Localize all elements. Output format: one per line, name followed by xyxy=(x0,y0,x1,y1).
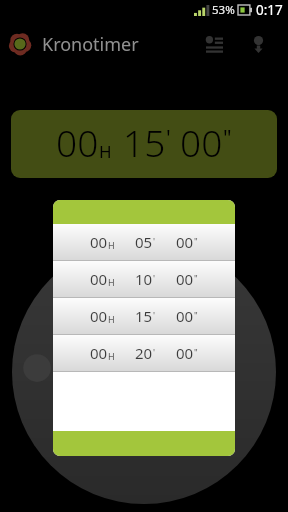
staticText: 00 xyxy=(90,306,108,326)
staticText: H xyxy=(108,239,115,251)
staticText: 05 xyxy=(135,232,153,252)
staticText: 20 xyxy=(135,343,153,363)
staticText: 00 xyxy=(176,269,194,289)
staticText: 00 xyxy=(90,343,108,363)
button[interactable]: 00 xyxy=(53,335,235,371)
staticText: ' xyxy=(153,346,156,358)
button[interactable]: Presets xyxy=(192,22,236,66)
button[interactable]: Save xyxy=(236,22,280,66)
staticText: 00 xyxy=(90,269,108,289)
staticText: " xyxy=(223,124,232,153)
staticText: ' xyxy=(166,124,171,153)
button[interactable]: 00 xyxy=(53,298,235,334)
button[interactable]: 00 xyxy=(11,110,277,178)
staticText: ' xyxy=(153,272,156,284)
button[interactable]: 00 xyxy=(53,224,235,260)
staticText: " xyxy=(194,235,198,247)
staticText: ' xyxy=(153,309,156,321)
staticText: 00 xyxy=(56,117,99,167)
staticText: 15 xyxy=(123,117,166,167)
staticText: 00 xyxy=(176,232,194,252)
staticText: 00 xyxy=(180,117,223,167)
staticText: " xyxy=(194,309,198,321)
staticText: 10 xyxy=(135,269,153,289)
staticText: Kronotimer xyxy=(42,32,139,57)
staticText: " xyxy=(194,272,198,284)
staticText: 0:17 xyxy=(256,1,283,19)
staticText: " xyxy=(194,346,198,358)
staticText: 53% xyxy=(212,2,235,18)
staticText: H xyxy=(108,350,115,362)
staticText: 15 xyxy=(135,306,153,326)
button[interactable] xyxy=(53,431,235,456)
staticText: H xyxy=(108,276,115,288)
staticText: 00 xyxy=(176,306,194,326)
staticText: H xyxy=(108,313,115,325)
button[interactable] xyxy=(53,200,235,224)
staticText: 00 xyxy=(176,343,194,363)
button[interactable]: 00 xyxy=(53,261,235,297)
staticText: 00 xyxy=(90,232,108,252)
staticText: H xyxy=(99,140,112,163)
staticText: ' xyxy=(153,235,156,247)
